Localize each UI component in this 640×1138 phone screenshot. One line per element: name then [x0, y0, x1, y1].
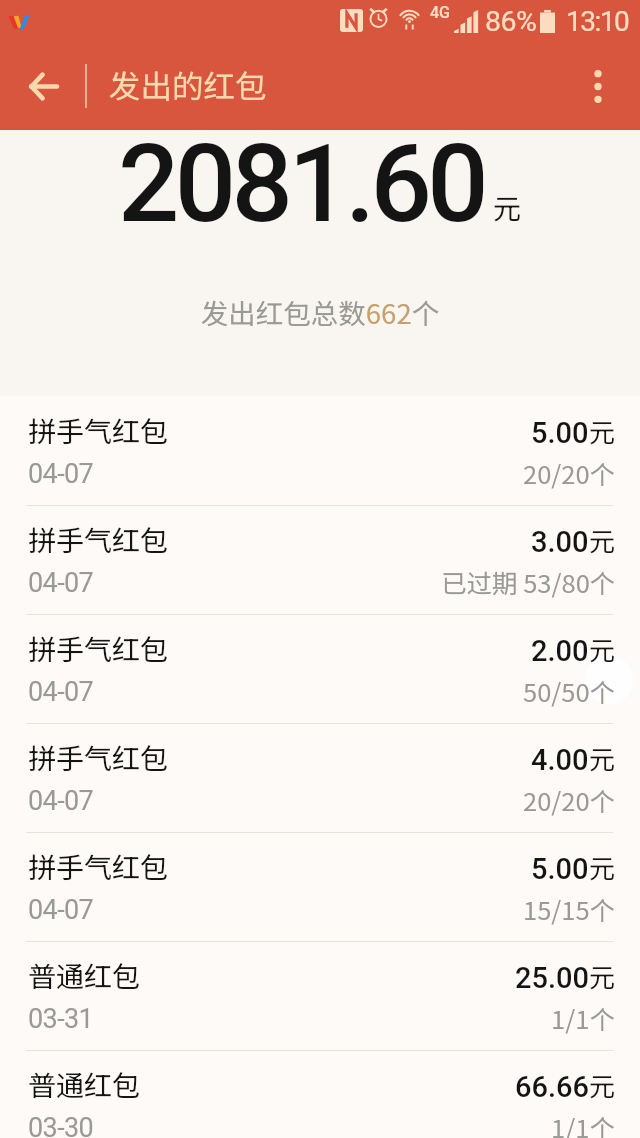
staticText: 3.00: [531, 525, 589, 559]
staticText: 元: [589, 412, 616, 450]
staticText: 2081.60: [118, 121, 485, 248]
button[interactable]: 拼手气红包: [0, 615, 640, 723]
staticText: 个: [590, 455, 616, 491]
staticText: 个: [590, 673, 616, 709]
button[interactable]: 拼手气红包: [0, 506, 640, 614]
staticText: 5.00: [531, 416, 589, 450]
staticText: 86%: [485, 5, 537, 38]
staticText: 03-31: [28, 1003, 94, 1035]
staticText: 50/50: [523, 672, 590, 709]
button[interactable]: 拼手气红包: [0, 833, 640, 941]
button[interactable]: More options: [568, 56, 628, 116]
staticText: 04-07: [28, 676, 94, 708]
staticText: 03-30: [28, 1112, 94, 1138]
staticText: 个: [590, 564, 616, 600]
staticText: 元: [589, 848, 616, 886]
staticText: 13:10: [566, 5, 629, 38]
staticText: 已过期 53/80: [441, 563, 590, 600]
staticText: 元: [589, 630, 616, 668]
staticText: 拼手气红包: [28, 519, 169, 560]
staticText: 04-07: [28, 458, 94, 490]
button[interactable]: Back: [8, 51, 78, 121]
staticText: 发出红包总数662个: [0, 292, 640, 332]
staticText: 04-07: [28, 567, 94, 599]
staticText: 1/1: [551, 999, 590, 1036]
button[interactable]: 普通红包: [0, 942, 640, 1050]
button[interactable]: 拼手气红包: [0, 397, 640, 505]
staticText: 个: [590, 1109, 616, 1138]
staticText: 2.00: [531, 634, 589, 668]
staticText: 20/20: [523, 454, 590, 491]
staticText: 66.66: [515, 1070, 589, 1104]
staticText: 1/1: [551, 1108, 590, 1138]
staticText: 4G: [430, 3, 450, 22]
staticText: 个: [590, 891, 616, 927]
staticText: 4.00: [531, 743, 589, 777]
staticText: 元: [589, 1066, 616, 1104]
staticText: 普通红包: [28, 955, 141, 996]
staticText: 拼手气红包: [28, 410, 169, 451]
staticText: 个: [590, 782, 616, 818]
staticText: 04-07: [28, 894, 94, 926]
staticText: 15/15: [523, 890, 590, 927]
staticText: 元: [589, 739, 616, 777]
staticText: 元: [589, 957, 616, 995]
button[interactable]: 普通红包: [0, 1051, 640, 1138]
button[interactable]: 拼手气红包: [0, 724, 640, 832]
staticText: 拼手气红包: [28, 846, 169, 887]
staticText: 发出的红包: [109, 61, 267, 107]
staticText: 拼手气红包: [28, 737, 169, 778]
staticText: 个: [590, 1000, 616, 1036]
staticText: 拼手气红包: [28, 628, 169, 669]
staticText: 20/20: [523, 781, 590, 818]
staticText: 5.00: [531, 852, 589, 886]
staticText: 04-07: [28, 785, 94, 817]
staticText: 25.00: [515, 961, 589, 995]
staticText: 普通红包: [28, 1064, 141, 1105]
staticText: 元: [589, 521, 616, 559]
staticText: 元: [493, 187, 522, 228]
